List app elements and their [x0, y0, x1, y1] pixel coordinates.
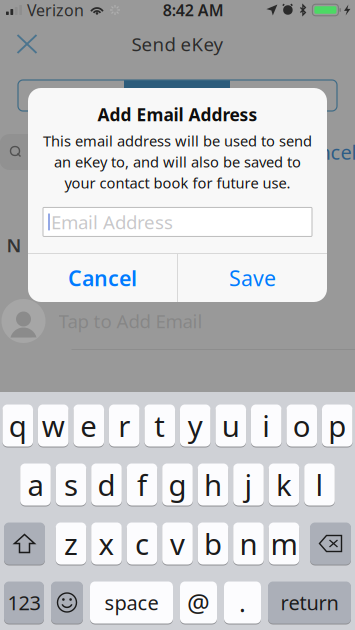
staticText: Cancel	[294, 139, 355, 165]
button[interactable]: Delete	[310, 522, 351, 565]
button[interactable]: Emoji	[51, 581, 83, 624]
staticText: p	[328, 406, 346, 445]
staticText: Cancel	[68, 264, 137, 292]
button[interactable]: j	[233, 463, 264, 506]
button[interactable]: k	[269, 463, 299, 506]
staticText: c	[135, 524, 149, 563]
button[interactable]: x	[91, 522, 122, 565]
button[interactable]: d	[91, 463, 122, 506]
staticText: 8:42 AM	[163, 0, 224, 21]
staticText: g	[168, 465, 186, 504]
button[interactable]: t	[144, 404, 175, 447]
button[interactable]: Segment 1	[18, 80, 124, 111]
button[interactable]: e	[73, 404, 104, 447]
staticText: o	[293, 406, 311, 445]
staticText: Verizon	[27, 0, 84, 21]
staticText: l	[315, 465, 323, 504]
button[interactable]: Segment 3	[230, 80, 337, 111]
button[interactable]: Search	[0, 134, 286, 170]
button[interactable]: Segment 2	[124, 80, 230, 111]
button[interactable]: .	[224, 581, 261, 624]
staticText: N	[6, 233, 21, 257]
button[interactable]: Cancel	[294, 134, 355, 170]
staticText: v	[170, 524, 185, 563]
staticText: return	[280, 589, 338, 616]
button[interactable]: q	[2, 404, 33, 447]
button[interactable]: u	[215, 404, 246, 447]
staticText: Email Address	[51, 209, 173, 234]
staticText: Send eKey	[131, 32, 223, 56]
button[interactable]: w	[38, 404, 68, 447]
staticText: x	[98, 524, 114, 563]
staticText: t	[154, 406, 165, 445]
staticText: n	[239, 524, 257, 563]
button[interactable]: Tap to Add Email	[0, 293, 355, 350]
staticText: an eKey to, and will also be saved to	[54, 152, 301, 171]
button[interactable]: z	[56, 522, 86, 565]
button[interactable]: o	[286, 404, 317, 447]
staticText: w	[42, 406, 65, 445]
button[interactable]: 123	[4, 581, 44, 624]
staticText: space	[104, 589, 158, 616]
staticText: your contact book for future use.	[64, 173, 290, 192]
button[interactable]: m	[269, 522, 299, 565]
staticText: h	[204, 465, 222, 504]
staticText: u	[222, 406, 240, 445]
button[interactable]: p	[322, 404, 352, 447]
staticText: b	[204, 524, 222, 563]
staticText: Add Email Address	[97, 103, 257, 126]
staticText: i	[262, 406, 270, 445]
button[interactable]: @	[180, 581, 217, 624]
staticText: r	[118, 406, 130, 445]
staticText: y	[188, 406, 203, 445]
button[interactable]: v	[162, 522, 193, 565]
staticText: a	[27, 465, 43, 504]
staticText: @	[187, 586, 210, 619]
button[interactable]: h	[198, 463, 228, 506]
button[interactable]: i	[251, 404, 281, 447]
button[interactable]: c	[127, 522, 157, 565]
button[interactable]: s	[56, 463, 86, 506]
staticText: Save	[229, 264, 276, 292]
button[interactable]: Shift	[4, 522, 45, 565]
staticText: m	[270, 524, 297, 563]
staticText: d	[97, 465, 115, 504]
button[interactable]: y	[180, 404, 210, 447]
staticText: Tap to Add Email	[58, 309, 202, 333]
staticText: 123	[7, 589, 40, 616]
button[interactable]: b	[198, 522, 228, 565]
button[interactable]: return	[268, 581, 351, 624]
button[interactable]: Cancel	[28, 254, 177, 302]
button[interactable]: Close	[5, 24, 49, 64]
button[interactable]: n	[233, 522, 264, 565]
button[interactable]: Save	[178, 254, 327, 302]
button[interactable]: a	[20, 463, 51, 506]
staticText: q	[9, 406, 27, 445]
button[interactable]: f	[127, 463, 157, 506]
staticText: s	[64, 465, 78, 504]
button[interactable]: r	[109, 404, 139, 447]
staticText: k	[276, 465, 292, 504]
staticText: j	[244, 465, 252, 504]
button[interactable]: l	[304, 463, 335, 506]
staticText: This email address will be used to send	[43, 131, 312, 150]
button[interactable]: space	[90, 581, 173, 624]
staticText: f	[137, 465, 147, 504]
staticText: z	[64, 524, 78, 563]
staticText: .	[239, 586, 246, 619]
button[interactable]: g	[162, 463, 193, 506]
staticText: e	[80, 406, 97, 445]
